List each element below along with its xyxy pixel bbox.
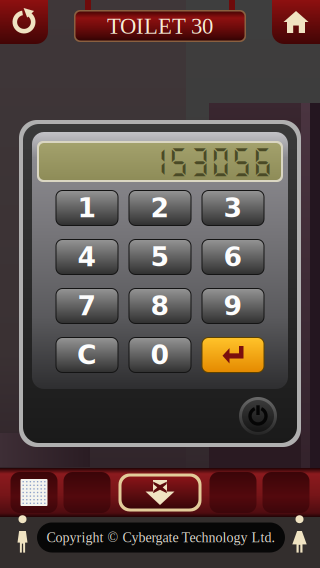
button[interactable]: 3 xyxy=(201,190,264,226)
button[interactable]: 6 xyxy=(201,239,264,275)
staticText: 1 xyxy=(77,192,96,223)
staticText: Copyright © Cybergate Technology Ltd. xyxy=(46,530,275,545)
button[interactable]: Power xyxy=(237,395,279,437)
staticText: 9 xyxy=(223,290,242,321)
staticText: 0 xyxy=(150,339,169,370)
button[interactable]: Home xyxy=(272,0,320,44)
button[interactable]: Restart xyxy=(0,0,48,44)
staticText: 153056 xyxy=(147,144,273,179)
staticText: C xyxy=(77,339,97,370)
staticText: 4 xyxy=(77,241,96,272)
button[interactable]: 8 xyxy=(128,288,191,324)
staticText: 5 xyxy=(150,241,169,272)
button[interactable]: Empty slot xyxy=(63,472,110,513)
staticText: 2 xyxy=(150,192,169,223)
button[interactable]: 2 xyxy=(128,190,191,226)
button[interactable]: Close inventory xyxy=(118,473,201,511)
staticText: 7 xyxy=(77,290,96,321)
button[interactable]: Empty slot xyxy=(262,472,309,513)
button[interactable]: Empty slot xyxy=(209,472,256,513)
button[interactable]: 1 xyxy=(55,190,118,226)
button[interactable]: Enter xyxy=(201,337,264,373)
button[interactable]: 5 xyxy=(128,239,191,275)
staticText: 6 xyxy=(223,241,242,272)
button[interactable]: 0 xyxy=(128,337,191,373)
button[interactable]: 9 xyxy=(201,288,264,324)
button[interactable]: C xyxy=(55,337,118,373)
button[interactable]: 4 xyxy=(55,239,118,275)
staticText: TOILET 30 xyxy=(107,13,213,38)
button[interactable]: 7 xyxy=(55,288,118,324)
staticText: 3 xyxy=(223,192,242,223)
button[interactable]: TOILET 30 xyxy=(74,10,246,42)
staticText: 8 xyxy=(150,290,169,321)
button[interactable]: Puzzle note xyxy=(10,472,57,513)
